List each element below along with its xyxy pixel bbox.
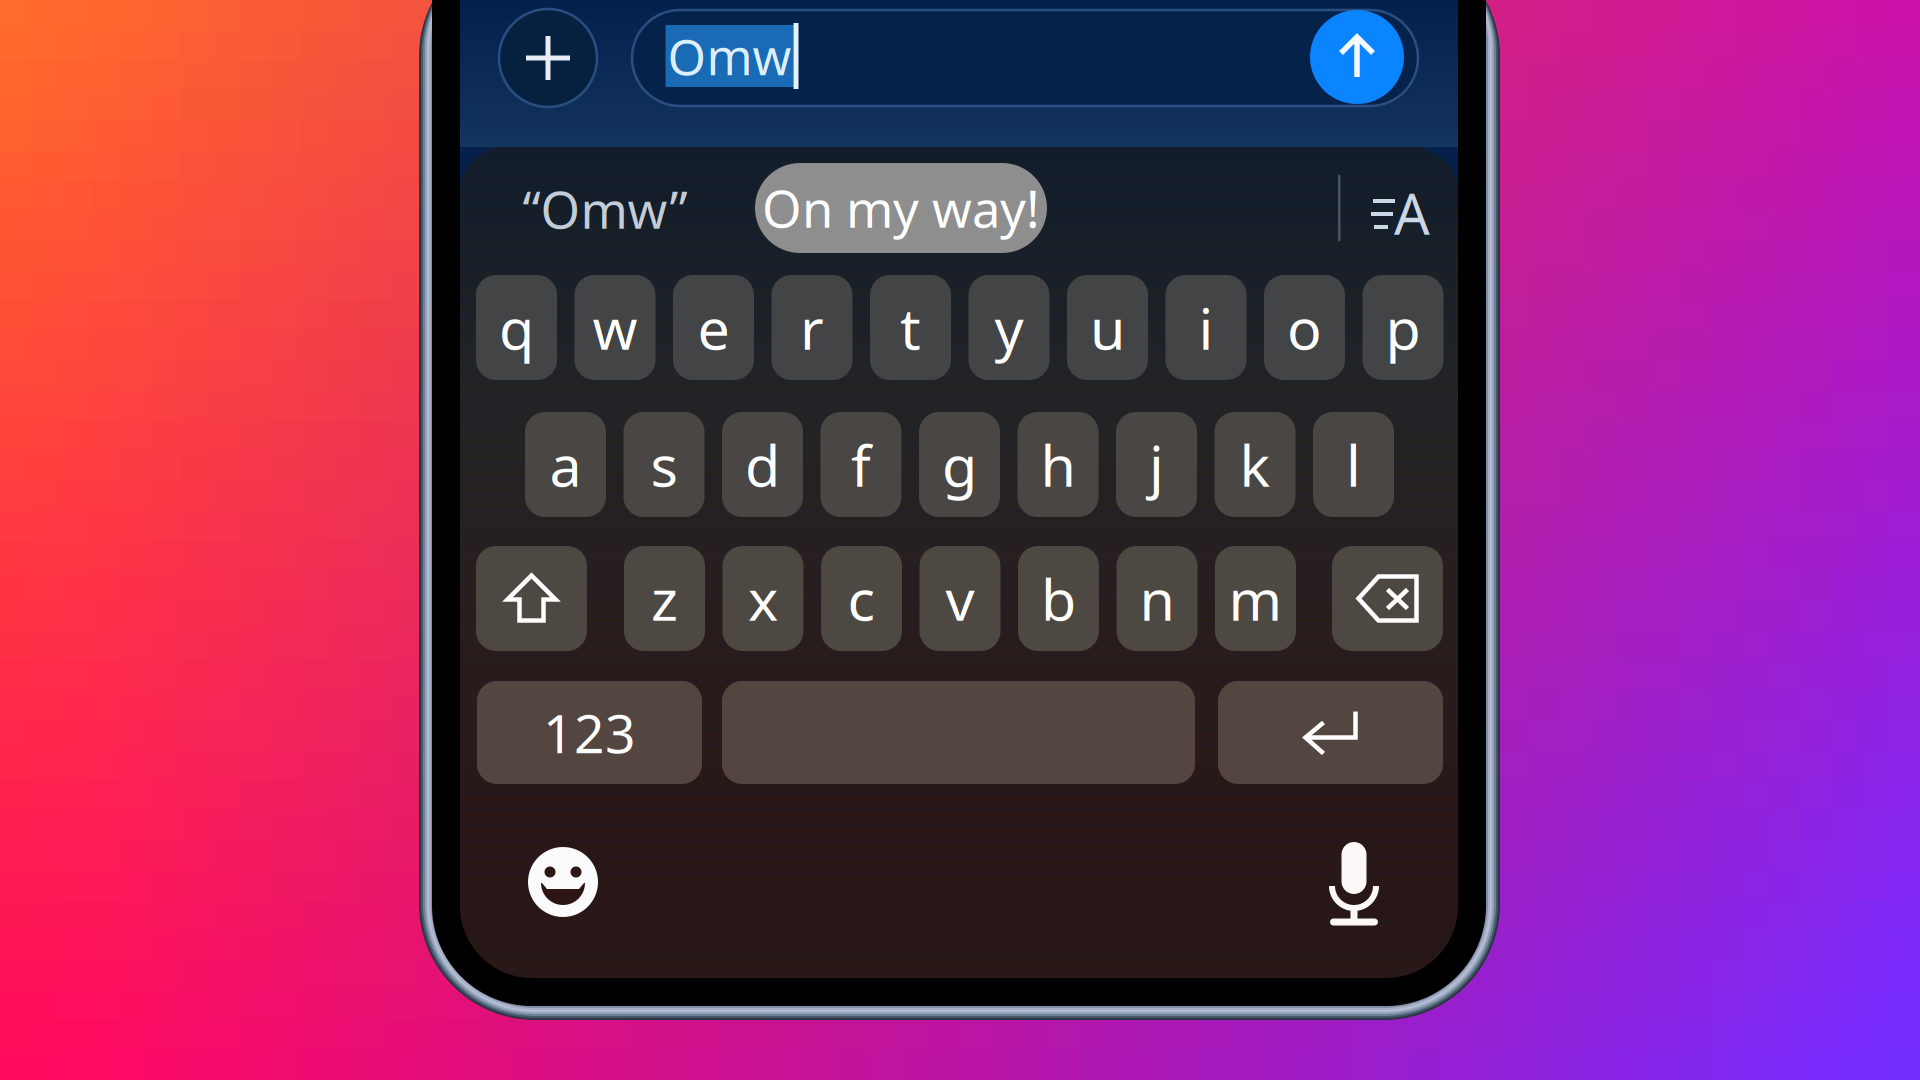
staticText: t	[900, 289, 921, 365]
button[interactable]: t	[870, 275, 951, 380]
button[interactable]	[1218, 681, 1443, 784]
staticText: f	[851, 426, 871, 502]
staticText: j	[1149, 426, 1164, 502]
staticText: a	[549, 426, 581, 502]
staticText: x	[748, 560, 778, 636]
staticText: g	[942, 426, 977, 502]
button[interactable]: q	[476, 275, 557, 380]
button[interactable]: j	[1116, 412, 1197, 517]
button[interactable]: m	[1215, 546, 1296, 651]
staticText: w	[592, 289, 637, 365]
staticText: r	[800, 289, 824, 365]
button[interactable]	[1332, 546, 1443, 651]
staticText: 123	[543, 697, 636, 768]
staticText: z	[651, 560, 678, 636]
button[interactable]: r	[771, 275, 852, 380]
button[interactable]: g	[919, 412, 1000, 517]
button[interactable]: h	[1017, 412, 1098, 517]
button[interactable]: e	[673, 275, 754, 380]
staticText: o	[1287, 289, 1322, 365]
staticText: c	[847, 560, 875, 636]
staticText: u	[1090, 289, 1125, 365]
button[interactable]: w	[574, 275, 655, 380]
staticText: p	[1385, 289, 1420, 365]
button[interactable]: Add attachment	[499, 9, 597, 107]
button[interactable]: d	[722, 412, 803, 517]
staticText: “Omw”	[522, 175, 687, 243]
staticText: y	[994, 289, 1023, 365]
button[interactable]: o	[1264, 275, 1345, 380]
button[interactable]: Text formatting	[1353, 166, 1445, 258]
button[interactable]: k	[1214, 412, 1295, 517]
button[interactable]: u	[1067, 275, 1148, 380]
staticText: s	[650, 426, 677, 502]
button[interactable]: s	[623, 412, 704, 517]
button[interactable]: x	[722, 546, 803, 651]
button[interactable]	[722, 681, 1195, 784]
button[interactable]: f	[820, 412, 901, 517]
button[interactable]: n	[1116, 546, 1197, 651]
staticText: i	[1198, 289, 1213, 365]
staticText: v	[945, 560, 974, 636]
staticText: n	[1139, 560, 1174, 636]
staticText: q	[499, 289, 534, 365]
button[interactable]: 123	[477, 681, 702, 784]
button[interactable]: p	[1362, 275, 1443, 380]
button[interactable]: “Omw”	[490, 164, 720, 254]
button[interactable]: i	[1165, 275, 1246, 380]
staticText: h	[1040, 426, 1075, 502]
button[interactable]: v	[919, 546, 1000, 651]
button[interactable]: On my way!	[755, 163, 1047, 253]
button[interactable]	[476, 546, 587, 651]
staticText: l	[1346, 426, 1361, 502]
staticText: On my way!	[762, 174, 1040, 242]
button[interactable]: l	[1313, 412, 1394, 517]
staticText: A	[1394, 176, 1430, 250]
button[interactable]: c	[821, 546, 902, 651]
staticText: Omw	[667, 23, 791, 89]
button[interactable]: Emoji	[515, 834, 611, 930]
staticText: d	[745, 426, 780, 502]
staticText: m	[1228, 560, 1282, 636]
button[interactable]: y	[968, 275, 1049, 380]
button[interactable]: Send	[1310, 10, 1404, 104]
button[interactable]: z	[624, 546, 705, 651]
staticText: e	[697, 289, 729, 365]
button[interactable]: Dictation	[1306, 832, 1402, 928]
button[interactable]: a	[525, 412, 606, 517]
button[interactable]: b	[1018, 546, 1099, 651]
staticText: k	[1239, 426, 1270, 502]
staticText: b	[1041, 560, 1076, 636]
